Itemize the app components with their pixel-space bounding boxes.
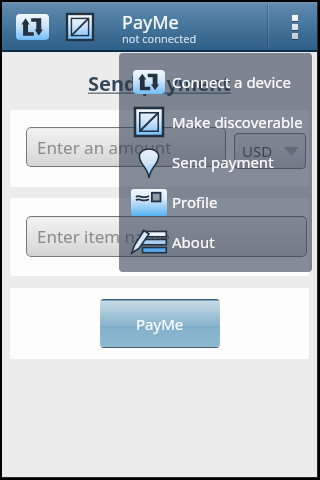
staticText: Enter an amount <box>37 136 172 159</box>
button[interactable]: Send payment <box>119 142 312 182</box>
button[interactable]: USD <box>234 133 306 169</box>
staticText: Profile <box>172 192 218 212</box>
staticText: About <box>172 232 215 252</box>
button[interactable]: Profile <box>119 182 312 222</box>
staticText: Make discoverable <box>172 112 303 132</box>
staticText: not connected <box>122 31 197 46</box>
staticText: PayMe <box>136 314 184 334</box>
staticText: Enter item name <box>37 225 171 248</box>
button[interactable]: About <box>119 222 312 262</box>
staticText: PayMe <box>122 10 179 35</box>
button[interactable]: Enter item name <box>26 216 307 257</box>
button[interactable]: Make discoverable <box>119 102 312 142</box>
button[interactable]: Enter an amount <box>26 127 226 167</box>
staticText: Connect a device <box>172 72 291 92</box>
staticText: Send payment <box>88 70 231 97</box>
staticText: USD <box>242 141 273 161</box>
staticText: Send payment <box>172 152 274 172</box>
button[interactable]: Make discoverable <box>67 14 93 40</box>
button[interactable]: Connect a device <box>16 14 49 40</box>
button[interactable]: More options <box>272 2 317 50</box>
button[interactable]: PayMe <box>100 299 220 348</box>
button[interactable]: Connect a device <box>119 62 312 102</box>
